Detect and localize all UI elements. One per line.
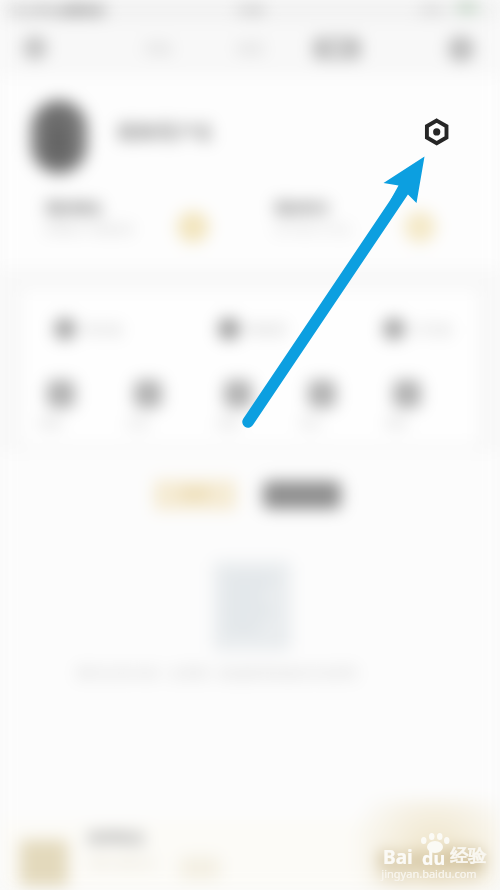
button[interactable] <box>31 100 87 174</box>
button[interactable] <box>264 192 450 252</box>
staticText: 我的钱包 <box>45 200 101 218</box>
button[interactable] <box>34 192 220 252</box>
staticText: jingyan.baidu.com <box>378 866 482 882</box>
staticText: 全部 <box>288 486 316 504</box>
staticText: 经验 <box>450 845 486 868</box>
staticText: Baidu经验 <box>378 843 485 873</box>
button[interactable]: 足迹 <box>118 372 178 438</box>
staticText: 昵称用户名 <box>118 121 213 145</box>
staticText: 推荐 <box>181 486 209 504</box>
button[interactable]: 客服 <box>377 372 437 438</box>
button[interactable]: 收藏 <box>31 372 91 438</box>
staticText: du <box>422 846 446 871</box>
button[interactable]: 全部 <box>263 481 341 509</box>
button[interactable]: Settings <box>417 112 457 152</box>
button[interactable]: 地址 <box>292 372 352 438</box>
button[interactable] <box>0 820 500 890</box>
button[interactable] <box>0 20 500 76</box>
staticText: 个人中心设置项目 <box>10 3 106 18</box>
button[interactable]: 我的 <box>314 38 360 59</box>
staticText: jingyan.baidu.com <box>381 866 477 881</box>
button[interactable]: Menu <box>23 36 47 60</box>
button[interactable]: 优惠 <box>208 372 268 438</box>
button[interactable]: 推荐 <box>154 480 236 510</box>
staticText: 我的积分 <box>274 200 330 218</box>
button[interactable]: More <box>448 36 474 62</box>
staticText: Bai <box>383 844 413 870</box>
staticText: 推荐商品 <box>88 830 144 848</box>
